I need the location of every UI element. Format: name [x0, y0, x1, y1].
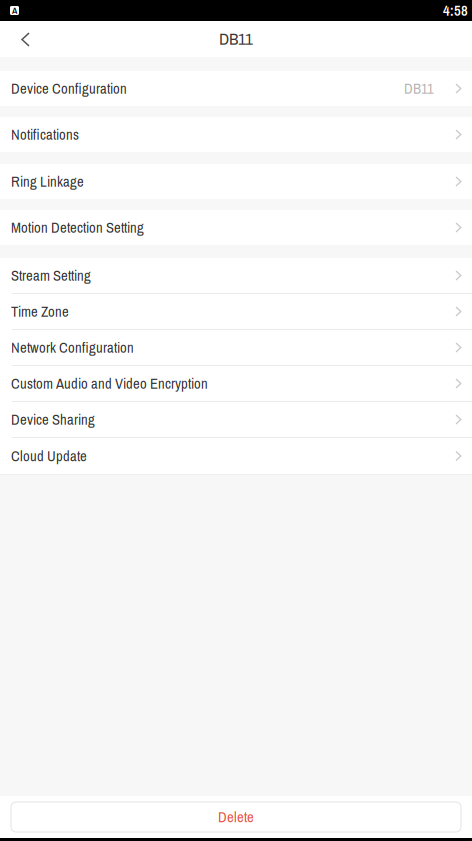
- button[interactable]: Back: [0, 21, 51, 57]
- button[interactable]: Device Sharing: [0, 402, 472, 438]
- staticText: Delete: [218, 807, 254, 827]
- button[interactable]: Notifications: [0, 117, 472, 152]
- staticText: A: [12, 4, 17, 17]
- button[interactable]: Custom Audio and Video Encryption: [0, 366, 472, 402]
- staticText: 4:58: [443, 1, 468, 20]
- staticText: DB11: [404, 79, 434, 98]
- button[interactable]: Cloud Update: [0, 438, 472, 474]
- button[interactable]: Time Zone: [0, 294, 472, 330]
- staticText: Custom Audio and Video Encryption: [11, 374, 208, 393]
- staticText: Cloud Update: [11, 446, 87, 466]
- staticText: Motion Detection Setting: [11, 218, 144, 237]
- staticText: Device Configuration: [11, 79, 127, 98]
- staticText: Ring Linkage: [11, 172, 84, 191]
- staticText: DB11: [219, 27, 253, 50]
- button[interactable]: Device Configuration: [0, 71, 472, 106]
- staticText: Notifications: [11, 125, 79, 144]
- button[interactable]: Delete: [11, 802, 461, 832]
- button[interactable]: Motion Detection Setting: [0, 210, 472, 245]
- button[interactable]: Stream Setting: [0, 258, 472, 294]
- staticText: Stream Setting: [11, 266, 91, 285]
- staticText: Network Configuration: [11, 338, 134, 357]
- staticText: Device Sharing: [11, 410, 95, 429]
- staticText: Time Zone: [11, 302, 69, 321]
- button[interactable]: Ring Linkage: [0, 164, 472, 199]
- button[interactable]: Network Configuration: [0, 330, 472, 366]
